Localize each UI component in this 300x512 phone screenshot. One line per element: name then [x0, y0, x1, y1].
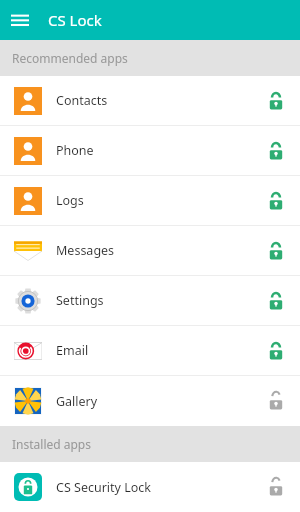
button[interactable]: Messages [0, 226, 300, 275]
other: Locked [266, 141, 286, 161]
staticText: Contacts [56, 92, 266, 109]
other: Locked [266, 191, 286, 211]
button[interactable]: Settings [0, 276, 300, 325]
staticText: Messages [56, 242, 266, 259]
other: Locked [266, 241, 286, 261]
button[interactable]: Email [0, 326, 300, 375]
other: Locked [266, 341, 286, 361]
button[interactable]: CS Security Lock [0, 462, 300, 512]
button[interactable]: Gallery [0, 376, 300, 426]
staticText: Email [56, 342, 266, 359]
staticText: Settings [56, 292, 266, 309]
staticText: CS Security Lock [56, 479, 266, 496]
button[interactable]: Open navigation menu [0, 0, 40, 40]
staticText: Recommended apps [12, 50, 128, 66]
other: Unlocked [266, 477, 286, 497]
staticText: Logs [56, 192, 266, 209]
other: Unlocked [266, 391, 286, 411]
staticText: CS Lock [48, 10, 102, 30]
button[interactable]: Phone [0, 126, 300, 175]
staticText: Installed apps [12, 436, 91, 452]
button[interactable]: Logs [0, 176, 300, 225]
other: Locked [266, 291, 286, 311]
button[interactable]: Contacts [0, 76, 300, 125]
staticText: Gallery [56, 393, 266, 410]
other: Locked [266, 91, 286, 111]
staticText: Phone [56, 142, 266, 159]
